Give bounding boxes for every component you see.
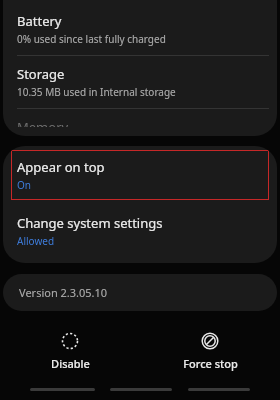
button[interactable]: Force stop: [140, 327, 280, 375]
other: Disable: [60, 331, 80, 351]
staticText: Disable: [51, 356, 90, 371]
staticText: Appear on top: [17, 158, 105, 176]
staticText: Allowed: [17, 234, 55, 248]
button[interactable]: Home: [110, 388, 172, 391]
button[interactable]: Memory: [3, 109, 277, 136]
button[interactable]: Back: [30, 388, 95, 391]
button[interactable]: Appear on top: [11, 150, 269, 200]
staticText: Change system settings: [17, 214, 163, 232]
staticText: On: [17, 178, 31, 192]
button[interactable]: Storage: [3, 56, 277, 108]
staticText: Memory: [17, 118, 69, 127]
button[interactable]: Disable: [0, 327, 140, 375]
button[interactable]: Change system settings: [3, 205, 277, 257]
staticText: Version 2.3.05.10: [19, 285, 108, 300]
staticText: Battery: [17, 12, 62, 30]
button[interactable]: Recents: [188, 388, 250, 391]
button[interactable]: Battery: [3, 3, 277, 55]
staticText: Storage: [17, 65, 65, 83]
staticText: 0% used since last fully charged: [17, 32, 166, 46]
staticText: Force stop: [183, 356, 238, 371]
staticText: 10.35 MB used in Internal storage: [17, 85, 176, 99]
button[interactable]: Version 2.3.05.10: [3, 274, 277, 311]
other: Force stop: [200, 331, 220, 351]
